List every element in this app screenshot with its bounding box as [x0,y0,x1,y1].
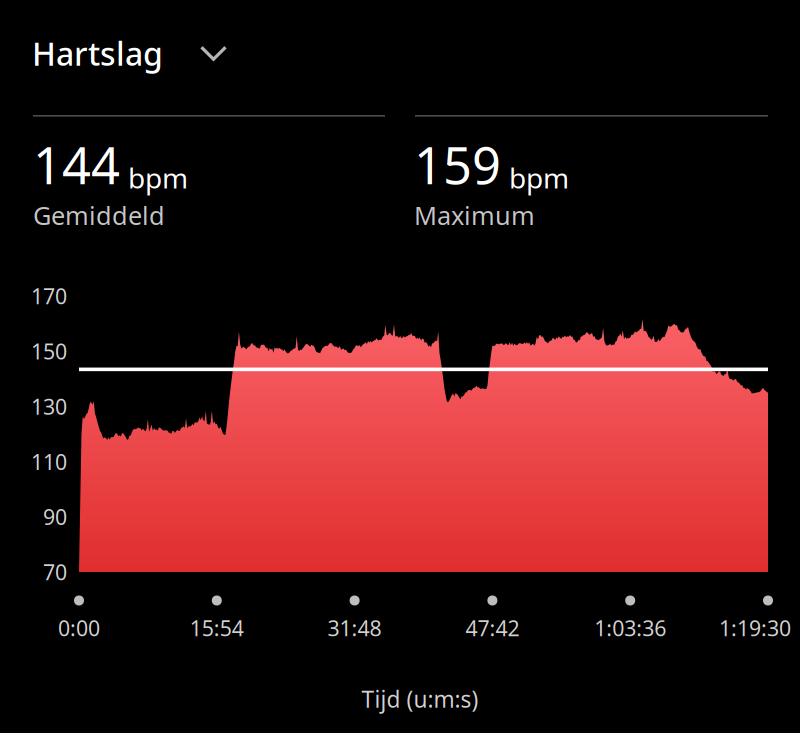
staticText: 1:03:36 [594,614,666,642]
staticText: 0:00 [58,614,100,642]
staticText: 15:54 [190,614,244,642]
staticText: 47:42 [465,614,519,642]
staticText: Tijd (u:m:s) [361,684,478,714]
staticText: 90 [43,503,67,531]
staticText: 170 [31,282,67,310]
staticText: bpm [128,159,188,196]
staticText: 144 [33,131,120,198]
staticText: 159 [414,131,501,198]
staticText: Hartslag [32,32,163,74]
button[interactable]: Hartslag [32,32,227,74]
staticText: Gemiddeld [33,198,165,232]
staticText: 31:48 [328,614,382,642]
staticText: Maximum [414,198,535,232]
staticText: 150 [31,337,67,365]
staticText: 1:19:30 [719,614,791,642]
staticText: bpm [509,159,569,196]
staticText: 130 [31,392,67,420]
staticText: 70 [43,558,67,586]
staticText: 110 [31,447,67,476]
